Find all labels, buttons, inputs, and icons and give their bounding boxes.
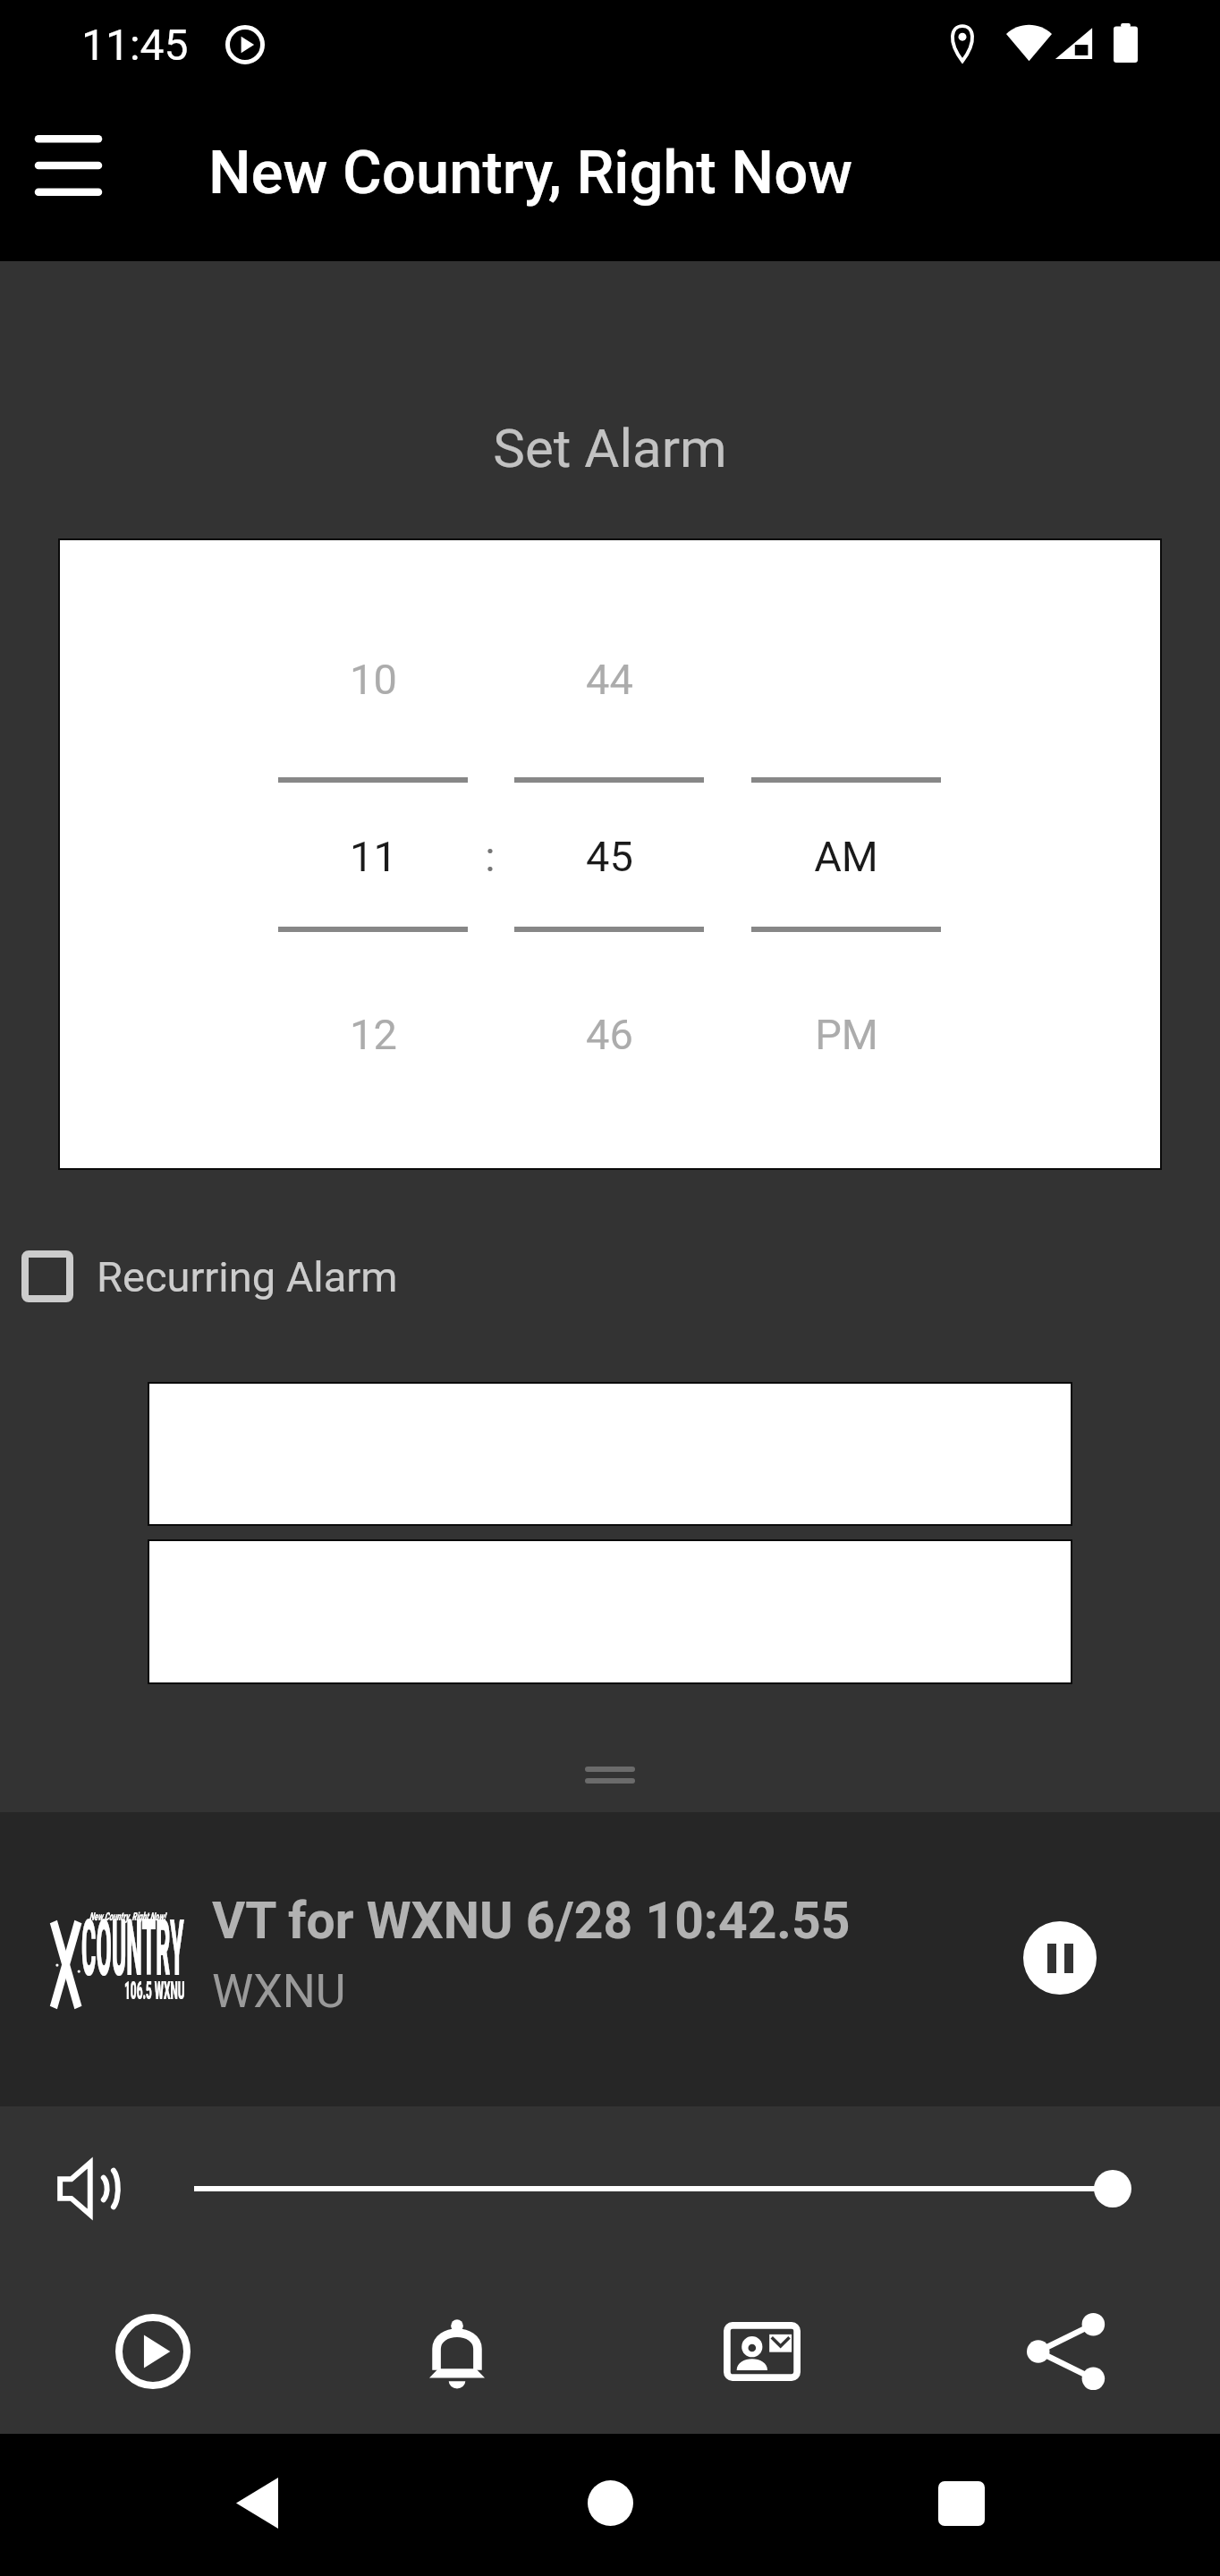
button[interactable]: 12	[278, 998, 468, 1070]
staticText: New Country, Right Now	[208, 138, 853, 208]
button[interactable]: Volume slider	[161, 2151, 1154, 2226]
button[interactable]: Play	[92, 2291, 214, 2412]
staticText: WXNU	[212, 1964, 346, 2019]
staticText: 46	[586, 1010, 633, 1059]
staticText: Recurring Alarm	[97, 1252, 398, 1301]
staticText: Set Alarm	[0, 417, 1220, 479]
staticText: 10	[350, 655, 397, 704]
button[interactable]: 46	[514, 998, 704, 1070]
button[interactable]: Contact us	[701, 2291, 823, 2412]
button[interactable]: Alarm sound	[149, 1384, 1071, 1524]
button[interactable]: Recent apps	[900, 2442, 1023, 2565]
button[interactable]: PM	[751, 998, 941, 1070]
staticText: 45	[586, 832, 633, 881]
button[interactable]: 10	[278, 643, 468, 715]
button[interactable]: 45	[514, 820, 704, 892]
staticText: COUNTRY	[81, 1903, 184, 1994]
staticText: PM	[815, 1010, 878, 1059]
staticText: New Country, Right Now!	[89, 1911, 166, 1924]
button[interactable]: AM	[751, 820, 941, 892]
button[interactable]: Set alarm	[396, 2291, 518, 2412]
staticText: 11	[350, 832, 397, 881]
button[interactable]: :	[395, 820, 585, 892]
button[interactable]: Volume	[50, 2150, 127, 2227]
button[interactable]: Pause	[1023, 1921, 1097, 1995]
staticText: 11:45	[81, 20, 189, 70]
button[interactable]: Home	[548, 2441, 672, 2564]
staticText: 106.5 WXNU	[124, 1976, 185, 2005]
staticText: AM	[814, 832, 878, 881]
staticText: :	[485, 832, 496, 881]
button[interactable]: Back	[195, 2441, 318, 2564]
button[interactable]: Alarm label	[149, 1541, 1071, 1682]
button[interactable]: Recurring Alarm	[0, 1240, 398, 1313]
button[interactable]: Expand player	[553, 1742, 667, 1807]
button[interactable]: Share	[1005, 2291, 1127, 2412]
button[interactable]: 11	[278, 820, 468, 892]
staticText: 12	[350, 1010, 397, 1059]
staticText: VT for WXNU 6/28 10:42.55	[212, 1891, 851, 1951]
button[interactable]: 44	[514, 643, 704, 715]
button[interactable]: Open navigation menu	[18, 115, 118, 216]
staticText: 44	[586, 655, 633, 704]
